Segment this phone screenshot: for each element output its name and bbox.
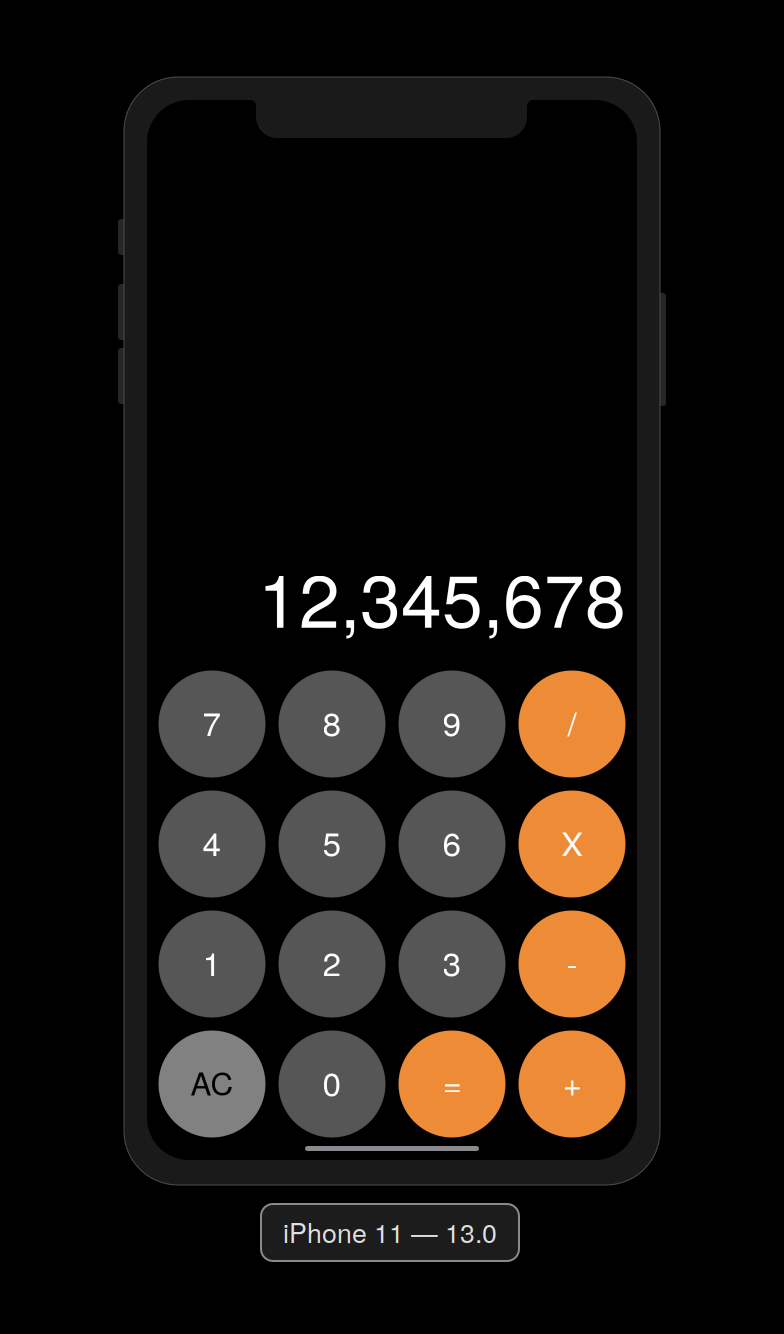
staticText: 0 <box>322 1058 341 1106</box>
button[interactable]: 7 <box>158 670 265 777</box>
button[interactable]: 6 <box>398 790 505 897</box>
staticText: - <box>566 938 577 986</box>
button[interactable]: 3 <box>398 910 505 1017</box>
button[interactable]: / <box>518 670 625 777</box>
button[interactable]: = <box>398 1030 505 1137</box>
staticText: 6 <box>442 818 461 866</box>
button[interactable]: 9 <box>398 670 505 777</box>
staticText: = <box>442 1058 461 1106</box>
staticText: X <box>561 818 583 866</box>
staticText: 12,345,678 <box>258 543 626 648</box>
button[interactable]: iPhone 11 — 13.0 <box>261 1204 519 1261</box>
button[interactable]: X <box>518 790 625 897</box>
staticText: 3 <box>442 938 461 986</box>
button[interactable]: + <box>518 1030 625 1137</box>
staticText: AC <box>190 1060 233 1104</box>
staticText: 4 <box>202 818 221 866</box>
staticText: 9 <box>442 698 461 746</box>
staticText: 8 <box>322 698 341 746</box>
button[interactable]: 5 <box>278 790 385 897</box>
staticText: + <box>562 1058 581 1106</box>
button[interactable]: 8 <box>278 670 385 777</box>
staticText: / <box>567 698 576 746</box>
button[interactable]: 1 <box>158 910 265 1017</box>
staticText: iPhone 11 — 13.0 <box>283 1212 497 1251</box>
staticText: 2 <box>322 938 341 986</box>
button[interactable]: AC <box>158 1030 265 1137</box>
button[interactable]: 0 <box>278 1030 385 1137</box>
staticText: 5 <box>322 818 341 866</box>
button[interactable]: 4 <box>158 790 265 897</box>
button[interactable]: 2 <box>278 910 385 1017</box>
staticText: 1 <box>202 938 221 986</box>
staticText: 7 <box>202 698 221 746</box>
button[interactable]: - <box>518 910 625 1017</box>
